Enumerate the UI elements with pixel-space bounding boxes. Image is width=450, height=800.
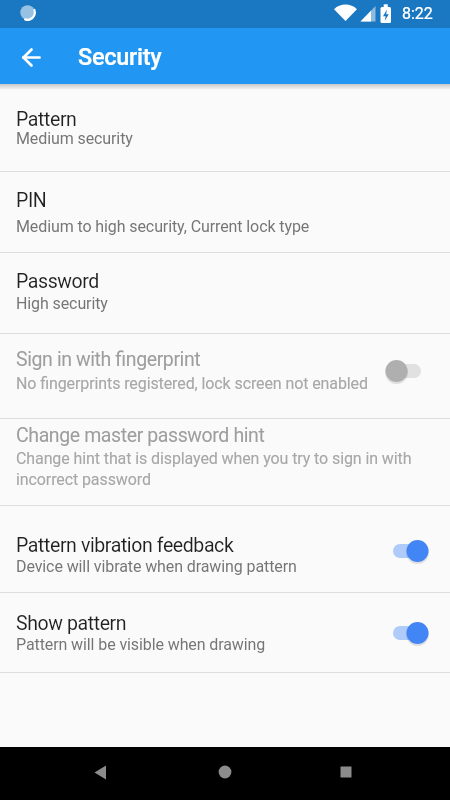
staticText: Pattern vibration feedback (16, 534, 234, 557)
staticText: Sign in with fingerprint (16, 348, 201, 371)
button[interactable]: PIN (0, 171, 450, 252)
staticText: Medium to high security, Current lock ty… (16, 217, 310, 236)
staticText: Device will vibrate when drawing pattern (16, 557, 297, 576)
button[interactable] (322, 748, 370, 798)
staticText: PIN (16, 189, 47, 212)
button[interactable]: Show pattern (0, 592, 450, 672)
button[interactable]: Password (0, 252, 450, 333)
button[interactable]: Sign in with fingerprint (0, 333, 450, 418)
staticText: Pattern will be visible when drawing (16, 635, 266, 654)
staticText: Pattern (16, 108, 77, 131)
staticText: Change hint that is displayed when you t… (16, 449, 412, 468)
staticText: Medium security (16, 129, 133, 148)
button[interactable]: Change master password hint (0, 418, 450, 505)
button[interactable] (201, 748, 249, 798)
staticText: Show pattern (16, 612, 127, 635)
staticText: 8:22 (402, 4, 433, 23)
staticText: Security (78, 43, 162, 71)
staticText: incorrect password (16, 470, 151, 489)
button[interactable]: Pattern (0, 84, 450, 171)
staticText: Change master password hint (16, 424, 265, 447)
button[interactable]: Pattern vibration feedback (0, 505, 450, 592)
button[interactable] (9, 33, 57, 81)
button[interactable] (76, 748, 124, 798)
staticText: High security (16, 294, 108, 313)
staticText: No fingerprints registered, lock screen … (16, 374, 368, 393)
staticText: Password (16, 270, 99, 293)
